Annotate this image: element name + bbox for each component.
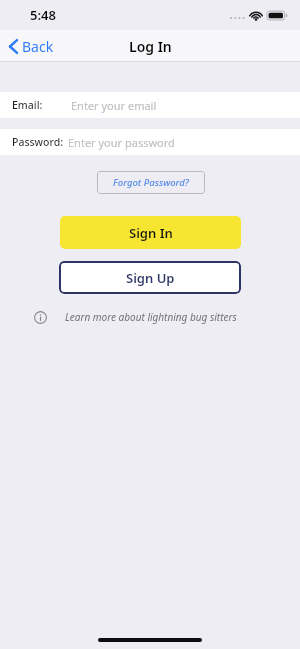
staticText: Back (22, 37, 54, 56)
staticText: Enter your email (71, 98, 157, 113)
staticText: Sign In (129, 224, 173, 242)
staticText: 5:48 (30, 6, 56, 24)
staticText: Forgot Password? (113, 176, 189, 189)
other: Information (34, 311, 47, 324)
staticText: Learn more about lightning bug sitters (65, 310, 237, 324)
staticText: Password: (12, 135, 64, 149)
button[interactable]: Email: (0, 92, 300, 118)
button[interactable]: Forgot Password? (97, 171, 205, 194)
button[interactable]: Password: (0, 129, 300, 155)
button[interactable]: Sign In (60, 216, 241, 249)
staticText: Log In (129, 37, 172, 56)
button[interactable]: Information (0, 308, 300, 326)
button[interactable]: Sign Up (59, 261, 241, 294)
button[interactable]: Back (0, 33, 64, 60)
staticText: Enter your password (68, 135, 175, 150)
staticText: Sign Up (126, 269, 175, 287)
staticText: Email: (12, 98, 43, 112)
